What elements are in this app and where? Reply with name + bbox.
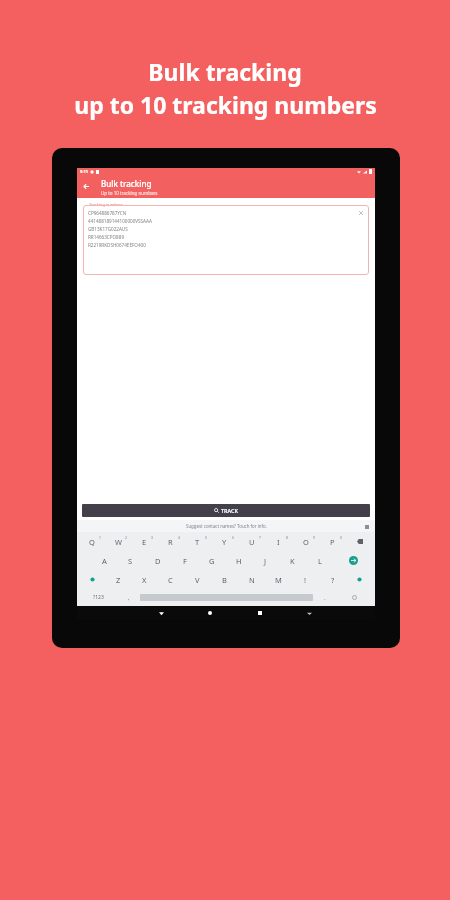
- staticText: .: [324, 594, 326, 602]
- staticText: I: [277, 537, 280, 547]
- staticText: CP964886787YCN: [88, 210, 127, 216]
- button[interactable]: Backspace: [346, 532, 373, 551]
- staticText: D: [155, 556, 161, 566]
- button[interactable]: Clear: [357, 209, 365, 217]
- button[interactable]: O: [292, 532, 319, 551]
- button[interactable]: Suggest contact names? Touch for info.: [77, 520, 375, 532]
- staticText: 441488189144100000VSSAAA: [88, 218, 152, 224]
- staticText: R2219RKDSH0674EEFO400: [88, 242, 146, 248]
- staticText: G: [209, 556, 215, 566]
- staticText: C: [168, 575, 173, 585]
- button[interactable]: Y: [211, 532, 238, 551]
- staticText: F: [183, 556, 187, 566]
- button[interactable]: !: [292, 570, 319, 589]
- staticText: Tracking numbers: [89, 202, 123, 207]
- staticText: 8: [286, 535, 288, 540]
- button[interactable]: B: [211, 570, 238, 589]
- button[interactable]: L: [306, 551, 333, 570]
- staticText: X: [142, 575, 147, 585]
- staticText: Z: [116, 575, 121, 585]
- staticText: H: [236, 556, 242, 566]
- staticText: Bulk tracking: [101, 178, 152, 189]
- button[interactable]: D: [144, 551, 171, 570]
- button[interactable]: Back: [81, 181, 92, 192]
- button[interactable]: R: [157, 532, 184, 551]
- button[interactable]: N: [238, 570, 265, 589]
- staticText: Y: [222, 537, 227, 547]
- staticText: B: [222, 575, 227, 585]
- button[interactable]: Shift: [346, 570, 373, 589]
- button[interactable]: I: [265, 532, 292, 551]
- staticText: ,: [128, 594, 130, 602]
- staticText: 1: [99, 535, 101, 540]
- button[interactable]: K: [279, 551, 306, 570]
- button[interactable]: Shift: [79, 570, 105, 589]
- staticText: V: [195, 575, 200, 585]
- staticText: T: [195, 537, 200, 547]
- staticText: L: [318, 556, 322, 566]
- staticText: 0: [340, 535, 342, 540]
- staticText: GB13K17G022AUS: [88, 226, 128, 232]
- button[interactable]: S: [117, 551, 144, 570]
- button[interactable]: Z: [105, 570, 131, 589]
- button[interactable]: T: [184, 532, 211, 551]
- button[interactable]: C: [157, 570, 184, 589]
- button[interactable]: Enter: [333, 551, 373, 570]
- button[interactable]: U: [238, 532, 265, 551]
- staticText: 4: [178, 535, 180, 540]
- staticText: W: [115, 537, 122, 547]
- staticText: 3: [151, 535, 153, 540]
- staticText: 7: [259, 535, 261, 540]
- staticText: S: [128, 556, 133, 566]
- button[interactable]: CP964886787YCN: [83, 205, 369, 275]
- button[interactable]: J: [252, 551, 279, 570]
- staticText: RR14663CPO889: [88, 234, 125, 240]
- button[interactable]: Keyboard settings: [363, 523, 370, 530]
- staticText: Suggest contact names? Touch for info.: [186, 523, 267, 529]
- staticText: O: [303, 537, 309, 547]
- staticText: U: [249, 537, 255, 547]
- button[interactable]: Q: [79, 532, 105, 551]
- button[interactable]: ?: [319, 570, 346, 589]
- button[interactable]: Recent apps: [255, 608, 265, 618]
- staticText: R: [168, 537, 173, 547]
- staticText: 5: [205, 535, 207, 540]
- staticText: E: [142, 537, 147, 547]
- staticText: 6: [232, 535, 234, 540]
- staticText: 9: [313, 535, 315, 540]
- staticText: Q: [89, 537, 95, 547]
- button[interactable]: ?123: [79, 591, 117, 604]
- staticText: TRACK: [221, 507, 239, 514]
- staticText: P: [330, 537, 335, 547]
- button[interactable]: G: [198, 551, 225, 570]
- staticText: J: [264, 556, 267, 566]
- staticText: A: [102, 556, 107, 566]
- button[interactable]: A: [91, 551, 117, 570]
- button[interactable]: X: [131, 570, 157, 589]
- staticText: up to 10 tracking numbers: [74, 89, 377, 120]
- button[interactable]: Hide keyboard: [304, 608, 314, 618]
- button[interactable]: V: [184, 570, 211, 589]
- staticText: Up to 10 tracking numbers: [101, 190, 158, 196]
- button[interactable]: W: [105, 532, 131, 551]
- staticText: !: [304, 575, 307, 585]
- button[interactable]: M: [265, 570, 292, 589]
- button[interactable]: Back: [156, 608, 166, 618]
- staticText: 9:11: [80, 169, 88, 174]
- button[interactable]: F: [171, 551, 198, 570]
- staticText: ?: [331, 575, 335, 585]
- staticText: K: [290, 556, 295, 566]
- staticText: ?123: [93, 594, 104, 601]
- button[interactable]: H: [225, 551, 252, 570]
- button[interactable]: P: [319, 532, 346, 551]
- button[interactable]: E: [131, 532, 157, 551]
- staticText: M: [275, 575, 282, 585]
- button[interactable]: ,: [117, 591, 140, 604]
- staticText: Bulk tracking: [148, 56, 302, 87]
- button[interactable]: Home: [205, 608, 215, 618]
- button[interactable]: TRACK: [82, 504, 370, 517]
- button[interactable]: Emoji: [336, 591, 373, 604]
- staticText: 2: [125, 535, 127, 540]
